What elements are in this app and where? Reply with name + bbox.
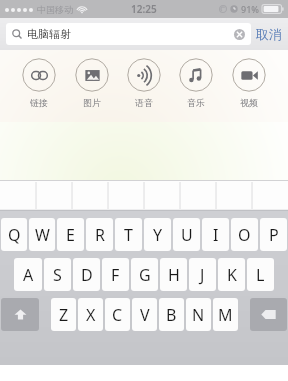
button[interactable]: 电脑辐射	[6, 23, 251, 45]
button[interactable]: 语音	[127, 58, 161, 108]
staticText: G	[139, 264, 151, 286]
button[interactable]: Shift	[1, 298, 39, 331]
staticText: L	[256, 264, 265, 286]
button[interactable]: Q	[1, 218, 27, 251]
button[interactable]: V	[132, 298, 157, 331]
staticText: 图片	[83, 97, 101, 108]
button[interactable]: 图片	[75, 58, 109, 108]
button[interactable]	[72, 180, 108, 211]
button[interactable]: H	[160, 258, 187, 291]
button[interactable]: X	[78, 298, 103, 331]
button[interactable]: K	[218, 258, 245, 291]
button[interactable]	[216, 180, 252, 211]
staticText: E	[66, 224, 75, 246]
staticText: 91%	[241, 3, 259, 15]
staticText: H	[168, 264, 180, 286]
button[interactable]: N	[186, 298, 211, 331]
staticText: Q	[8, 224, 21, 246]
button[interactable]: P	[260, 218, 287, 251]
staticText: 中国移动	[37, 4, 73, 15]
button[interactable]: U	[173, 218, 200, 251]
button[interactable]: Z	[51, 298, 76, 331]
button[interactable]: I	[202, 218, 229, 251]
button[interactable]: W	[29, 218, 55, 251]
staticText: A	[23, 264, 34, 286]
button[interactable]: L	[247, 258, 274, 291]
staticText: P	[269, 224, 279, 246]
button[interactable]: D	[73, 258, 100, 291]
staticText: I	[213, 224, 219, 246]
staticText: S	[53, 264, 62, 286]
button[interactable]: S	[44, 258, 71, 291]
button[interactable]: R	[86, 218, 113, 251]
staticText: X	[86, 304, 96, 326]
staticText: Y	[153, 224, 163, 246]
button[interactable]: O	[231, 218, 258, 251]
button[interactable]: Backspace	[250, 298, 287, 331]
button[interactable]	[144, 180, 180, 211]
staticText: F	[111, 264, 120, 286]
button[interactable]: F	[102, 258, 129, 291]
staticText: 取消	[256, 26, 282, 42]
button[interactable]: G	[131, 258, 158, 291]
button[interactable]	[36, 180, 72, 211]
staticText: T	[124, 224, 133, 246]
staticText: N	[192, 304, 205, 326]
button[interactable]: A	[14, 258, 42, 291]
staticText: O	[238, 224, 251, 246]
staticText: Z	[59, 304, 69, 326]
button[interactable]	[252, 180, 288, 211]
button[interactable]: E	[57, 218, 84, 251]
staticText: 链接	[30, 97, 48, 108]
button[interactable]: J	[189, 258, 216, 291]
staticText: U	[181, 224, 193, 246]
staticText: 视频	[240, 97, 258, 108]
button[interactable]: 链接	[22, 58, 56, 108]
staticText: W	[35, 224, 50, 246]
button[interactable]: 视频	[232, 58, 266, 108]
staticText: K	[227, 264, 237, 286]
button[interactable]: C	[105, 298, 130, 331]
button[interactable]	[180, 180, 216, 211]
button[interactable]: Y	[144, 218, 171, 251]
staticText: 语音	[135, 97, 153, 108]
staticText: J	[200, 264, 205, 286]
staticText: C	[112, 304, 123, 326]
staticText: 12:25	[131, 2, 157, 16]
staticText: 电脑辐射	[27, 27, 71, 41]
button[interactable]: M	[213, 298, 238, 331]
staticText: V	[140, 304, 150, 326]
staticText: D	[81, 264, 93, 286]
button[interactable]: Clear text	[234, 29, 245, 40]
staticText: 音乐	[187, 97, 205, 108]
button[interactable]: 取消	[256, 26, 282, 42]
button[interactable]: 音乐	[179, 58, 213, 108]
staticText: M	[218, 304, 233, 326]
button[interactable]: T	[115, 218, 142, 251]
button[interactable]: B	[159, 298, 184, 331]
button[interactable]	[0, 180, 36, 211]
staticText: B	[166, 304, 177, 326]
button[interactable]	[108, 180, 144, 211]
staticText: R	[95, 224, 105, 246]
